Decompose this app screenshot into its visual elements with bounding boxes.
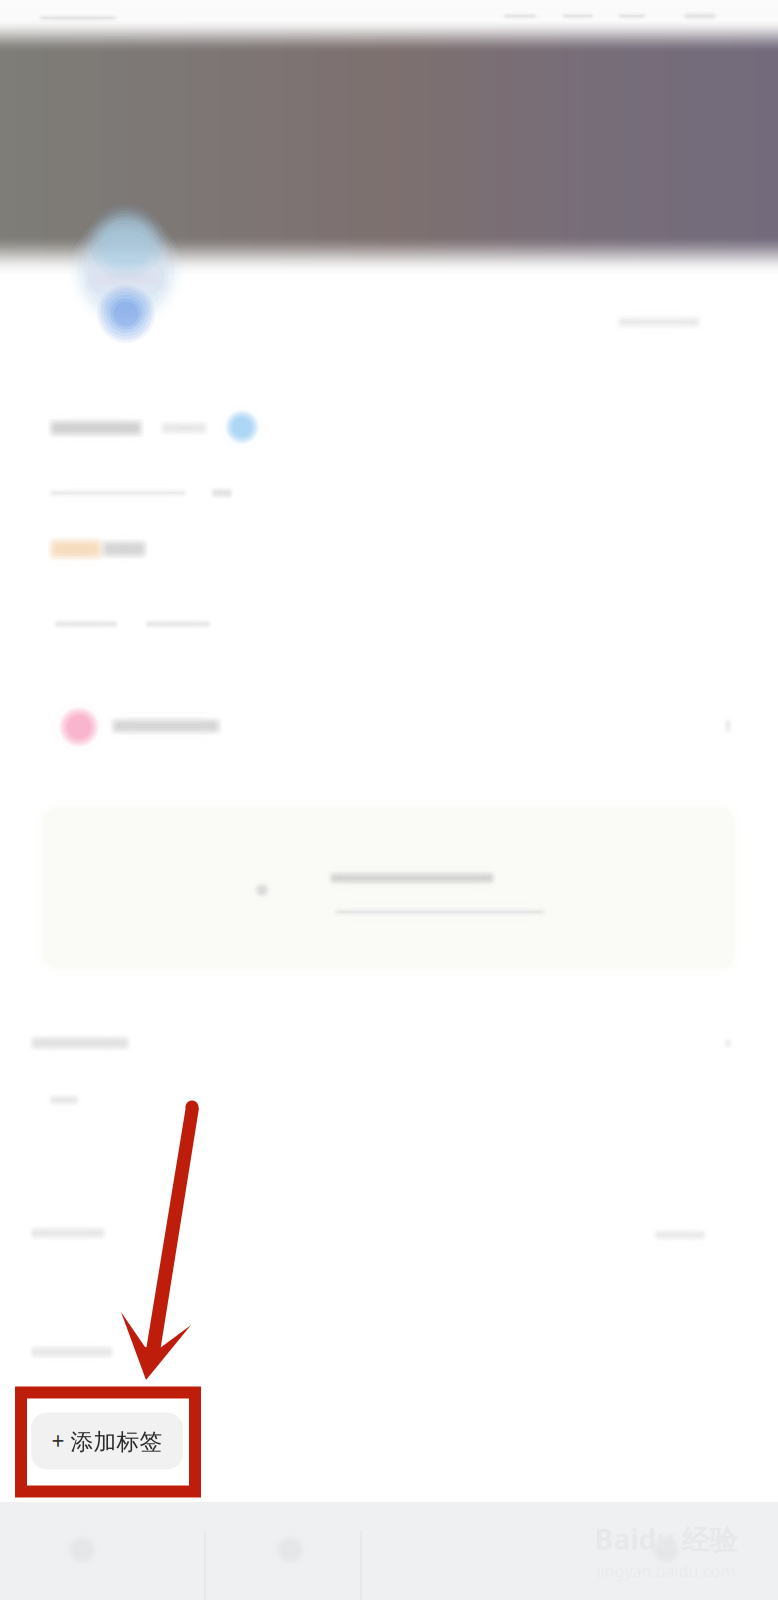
staticText: Baidu 经验	[594, 1520, 737, 1557]
staticText: + 添加标签	[51, 1426, 162, 1456]
button[interactable]: + 添加标签	[31, 1412, 183, 1469]
